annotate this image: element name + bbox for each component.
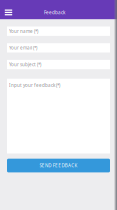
staticText: Your email (*) — [9, 45, 37, 51]
staticText: Your name (*) — [9, 28, 38, 34]
button[interactable]: Menu — [0, 0, 19, 19]
staticText: Input your feedback (*) — [9, 82, 60, 88]
staticText: SEND FEEDBACK — [39, 162, 77, 169]
staticText: Feedback — [44, 9, 65, 16]
button[interactable]: SEND FEEDBACK — [7, 159, 110, 172]
staticText: Your subject (*) — [9, 61, 41, 68]
